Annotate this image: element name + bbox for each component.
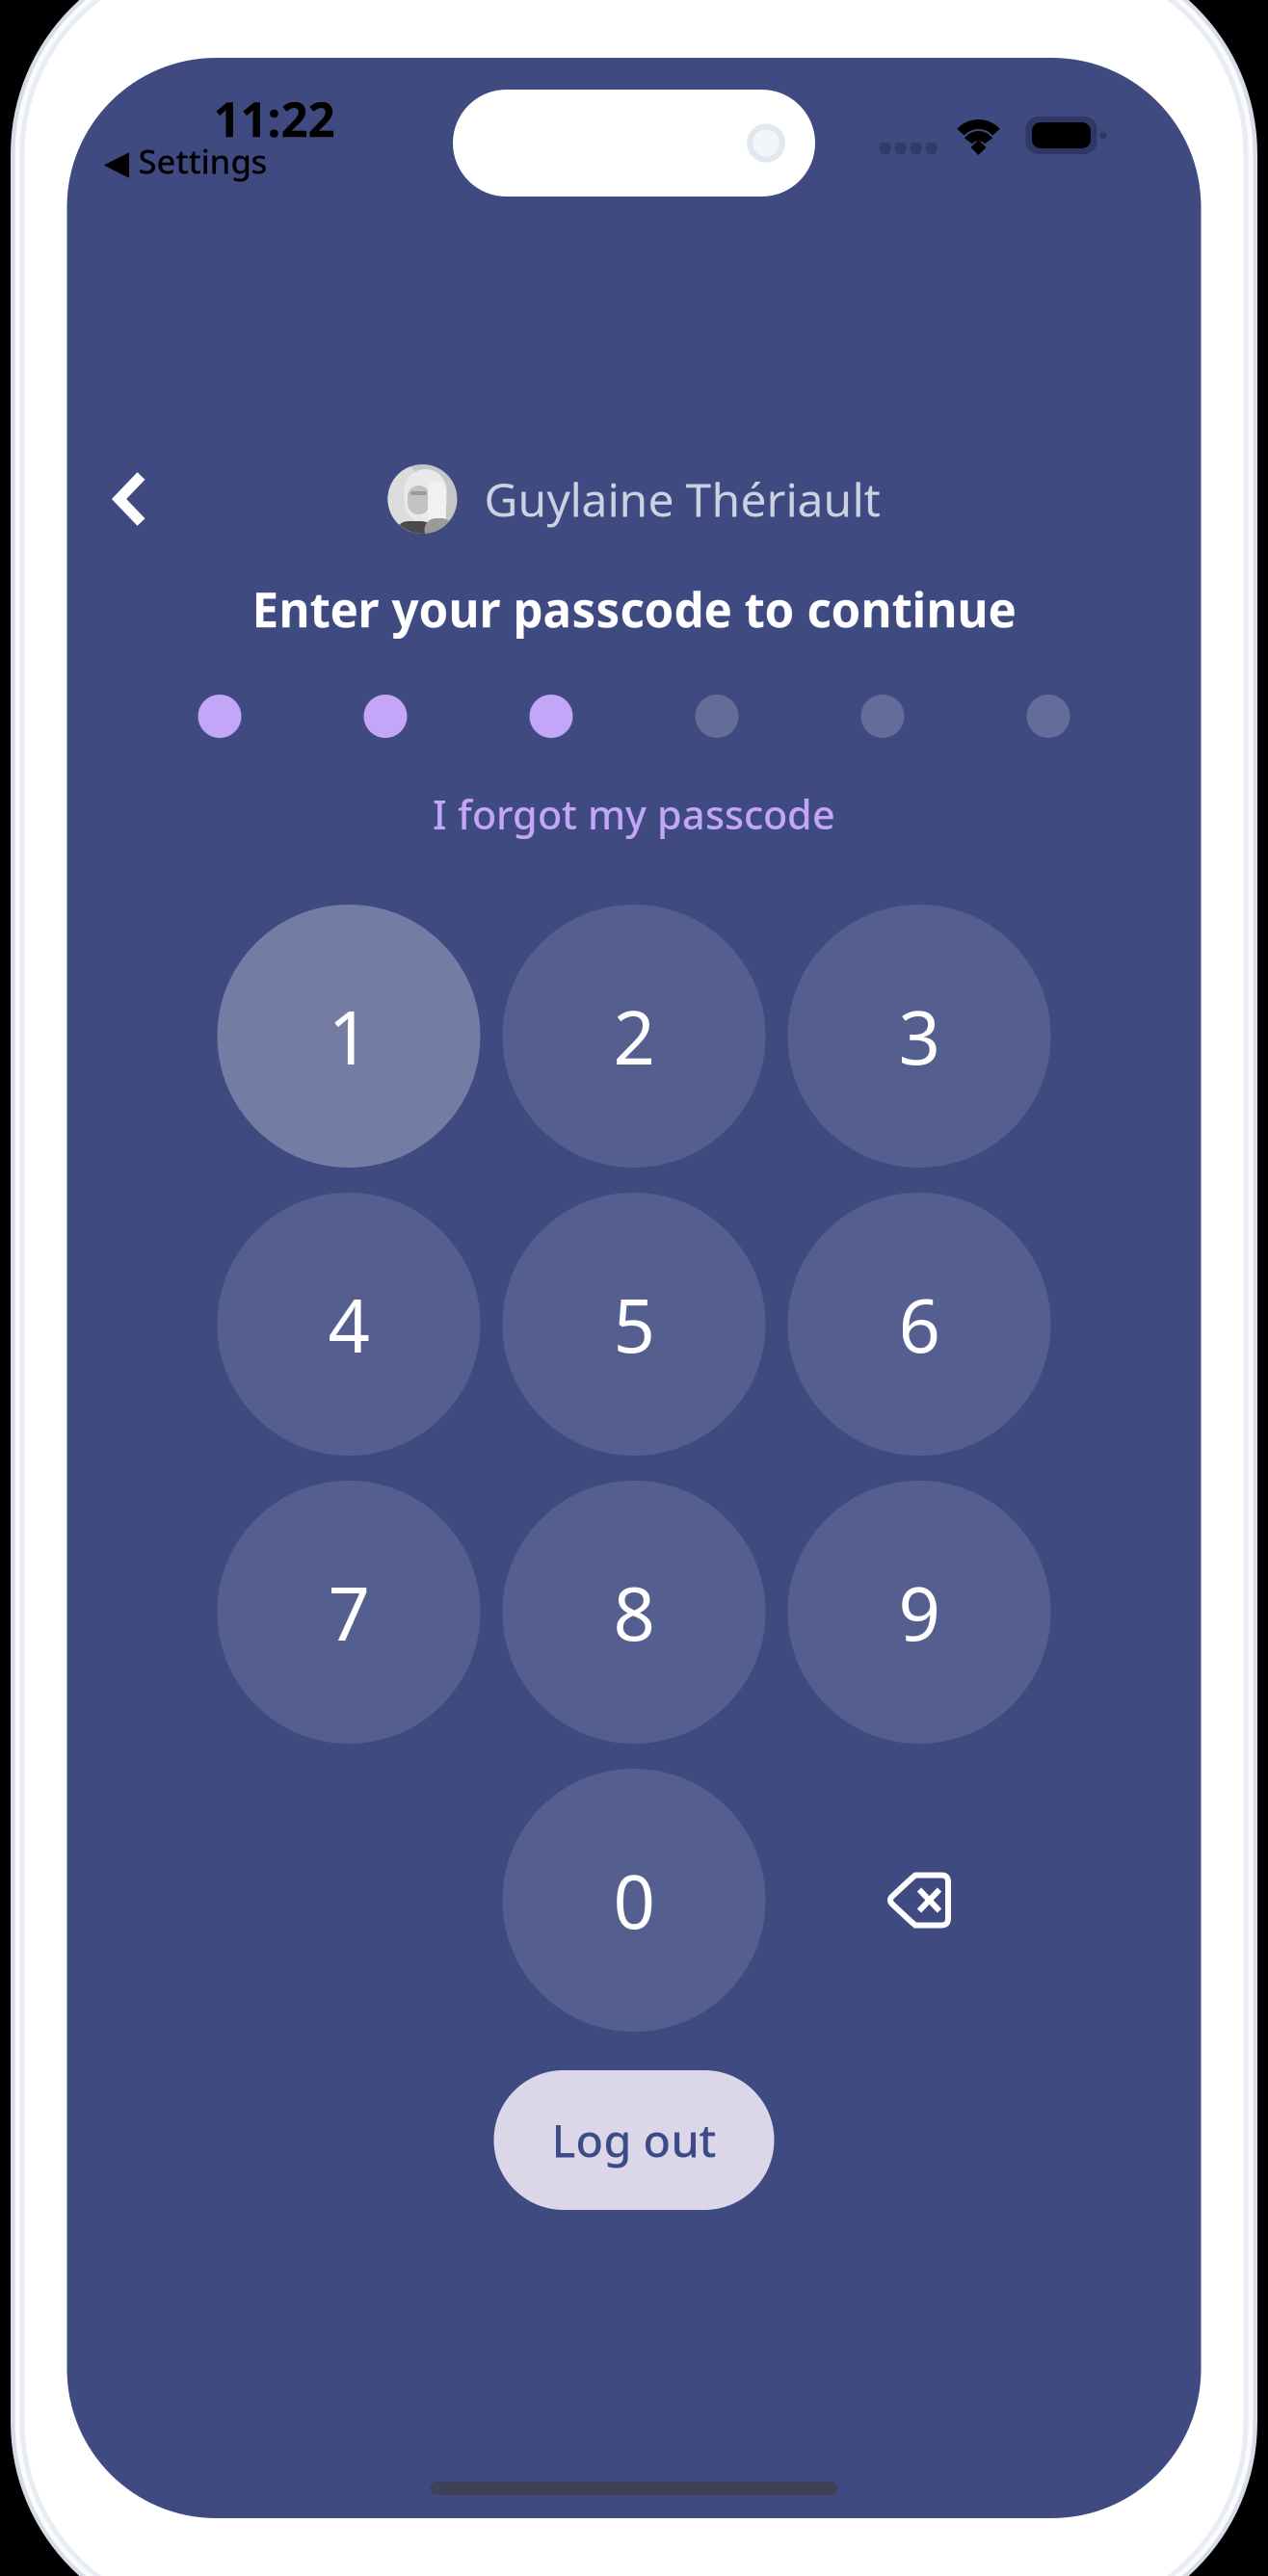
button[interactable]: 2 [502, 905, 766, 1168]
button[interactable]: 1 [217, 905, 480, 1168]
button[interactable]: 0 [502, 1769, 766, 2032]
staticText: I forgot my passcode [433, 788, 835, 841]
staticText: Enter your passcode to continue [252, 577, 1016, 640]
staticText: 9 [898, 1564, 940, 1661]
staticText: 3 [898, 987, 940, 1085]
button[interactable]: 4 [217, 1193, 480, 1456]
staticText: ◀ Settings [104, 139, 267, 183]
staticText: 7 [328, 1564, 370, 1661]
staticText: 11:22 [213, 87, 335, 150]
button[interactable]: Log out [494, 2070, 774, 2210]
staticText: Log out [552, 2110, 716, 2170]
staticText: 6 [898, 1275, 940, 1373]
staticText: 5 [613, 1275, 655, 1373]
staticText: 2 [613, 987, 655, 1085]
staticText: 1 [328, 987, 370, 1085]
button[interactable]: Delete [788, 1769, 1051, 2032]
button[interactable]: ◀ Settings [104, 143, 267, 179]
button[interactable]: I forgot my passcode [433, 792, 835, 836]
button[interactable]: 8 [502, 1481, 766, 1744]
button[interactable]: 6 [788, 1193, 1051, 1456]
button[interactable]: 3 [788, 905, 1051, 1168]
staticText: 4 [328, 1275, 370, 1373]
button[interactable]: Back [67, 451, 190, 547]
button[interactable]: 9 [788, 1481, 1051, 1744]
button[interactable]: 5 [502, 1193, 766, 1456]
staticText: 8 [613, 1564, 655, 1661]
staticText: Guylaine Thériault [484, 468, 880, 530]
staticText: 0 [613, 1852, 655, 1949]
button[interactable]: 7 [217, 1481, 480, 1744]
